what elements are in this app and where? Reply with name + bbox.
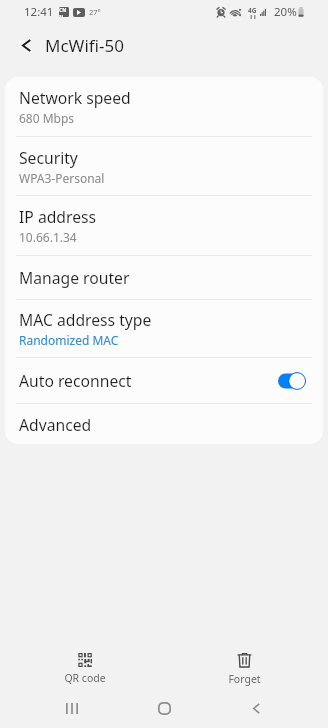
- staticText: Security: [19, 147, 78, 168]
- button[interactable]: Back: [231, 689, 281, 727]
- button[interactable]: QR code: [20, 643, 149, 690]
- staticText: WPA3-Personal: [19, 170, 105, 186]
- button[interactable]: Forget: [180, 643, 309, 690]
- button[interactable]: Auto reconnect: [5, 358, 323, 403]
- button[interactable]: Home: [139, 689, 189, 727]
- staticText: 20%: [274, 4, 297, 20]
- button[interactable]: Navigate up: [0, 24, 42, 66]
- staticText: Network speed: [19, 87, 131, 108]
- button[interactable]: Manage router: [5, 256, 323, 299]
- staticText: 4G: [248, 6, 257, 15]
- button[interactable]: IP address: [5, 196, 323, 255]
- staticText: Auto reconnect: [19, 370, 132, 391]
- button[interactable]: Advanced: [5, 404, 323, 444]
- button[interactable]: Security: [5, 137, 323, 195]
- staticText: Advanced: [19, 414, 92, 435]
- staticText: 12:41: [24, 4, 54, 20]
- staticText: 27°: [89, 7, 101, 17]
- staticText: 10.66.1.34: [19, 229, 77, 245]
- staticText: IP address: [19, 206, 97, 227]
- button[interactable]: Recent apps: [47, 689, 97, 727]
- staticText: Forget: [228, 672, 261, 686]
- staticText: 680 Mbps: [19, 110, 75, 126]
- button[interactable]: Network speed: [5, 77, 323, 136]
- staticText: CNN: [59, 7, 69, 17]
- staticText: MAC address type: [19, 309, 152, 330]
- staticText: Manage router: [19, 267, 130, 288]
- staticText: Randomized MAC: [19, 332, 119, 348]
- staticText: QR code: [64, 671, 106, 685]
- button[interactable]: MAC address type: [5, 300, 323, 357]
- staticText: McWifi-50: [45, 34, 124, 57]
